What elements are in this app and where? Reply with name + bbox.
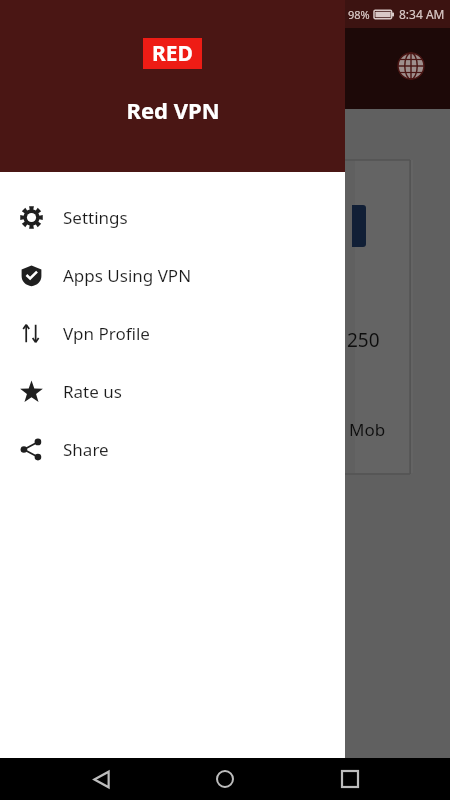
button[interactable]: Change language xyxy=(393,48,429,84)
staticText: Rate us xyxy=(63,380,122,403)
button[interactable]: Recent apps xyxy=(326,758,374,800)
button[interactable]: Settings xyxy=(0,188,345,246)
staticText: RED xyxy=(152,39,193,68)
button[interactable]: Share xyxy=(0,420,345,478)
button[interactable]: Home xyxy=(201,758,249,800)
staticText: Mob xyxy=(349,418,386,441)
button[interactable]: Rate us xyxy=(0,362,345,420)
staticText: 98% xyxy=(348,7,370,22)
staticText: 8:34 AM xyxy=(399,6,445,22)
staticText: Red VPN xyxy=(126,95,220,125)
staticText: Vpn Profile xyxy=(63,322,150,345)
button[interactable]: Apps Using VPN xyxy=(0,246,345,304)
staticText: Apps Using VPN xyxy=(63,264,192,287)
staticText: 250 xyxy=(347,327,380,353)
button[interactable]: Vpn Profile xyxy=(0,304,345,362)
staticText: Share xyxy=(63,438,109,461)
staticText: Settings xyxy=(63,206,128,229)
button[interactable]: Back xyxy=(77,758,125,800)
